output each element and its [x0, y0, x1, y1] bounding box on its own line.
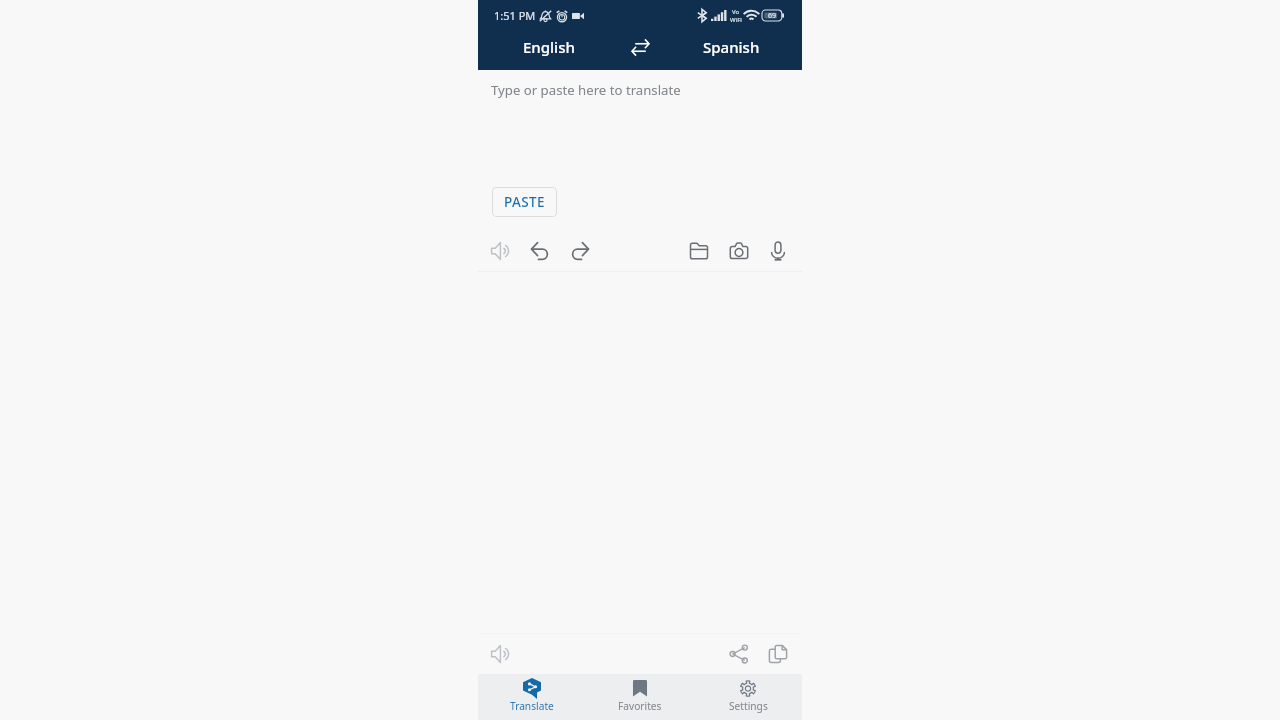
button[interactable]: Open file [679, 231, 719, 271]
button[interactable]: PASTE [492, 187, 557, 217]
staticText: Spanish [703, 37, 760, 57]
button[interactable]: Redo [560, 231, 600, 271]
button[interactable]: Listen translation [480, 634, 520, 674]
button[interactable]: Copy [758, 634, 798, 674]
button[interactable]: Listen [480, 231, 520, 271]
button[interactable]: English [478, 30, 620, 70]
staticText: Settings [729, 699, 768, 713]
staticText: 1:51 PM [494, 8, 536, 23]
staticText: 69 [768, 11, 777, 21]
button[interactable]: Voice input [758, 231, 798, 271]
button[interactable]: Settings [694, 674, 802, 720]
staticText: WiFi [730, 16, 742, 24]
button[interactable]: Share [719, 634, 759, 674]
button[interactable]: Favorites [586, 674, 694, 720]
staticText: Vo [732, 8, 740, 16]
staticText: Translate [510, 699, 554, 713]
button[interactable]: Spanish [660, 30, 802, 70]
staticText: English [523, 37, 575, 57]
staticText: Type or paste here to translate [491, 81, 681, 99]
staticText: PASTE [504, 193, 545, 211]
button[interactable]: Translate [478, 674, 586, 720]
staticText: Favorites [618, 699, 662, 713]
button[interactable]: Swap languages [620, 30, 660, 70]
button[interactable]: Undo [520, 231, 560, 271]
button[interactable]: Camera [719, 231, 759, 271]
